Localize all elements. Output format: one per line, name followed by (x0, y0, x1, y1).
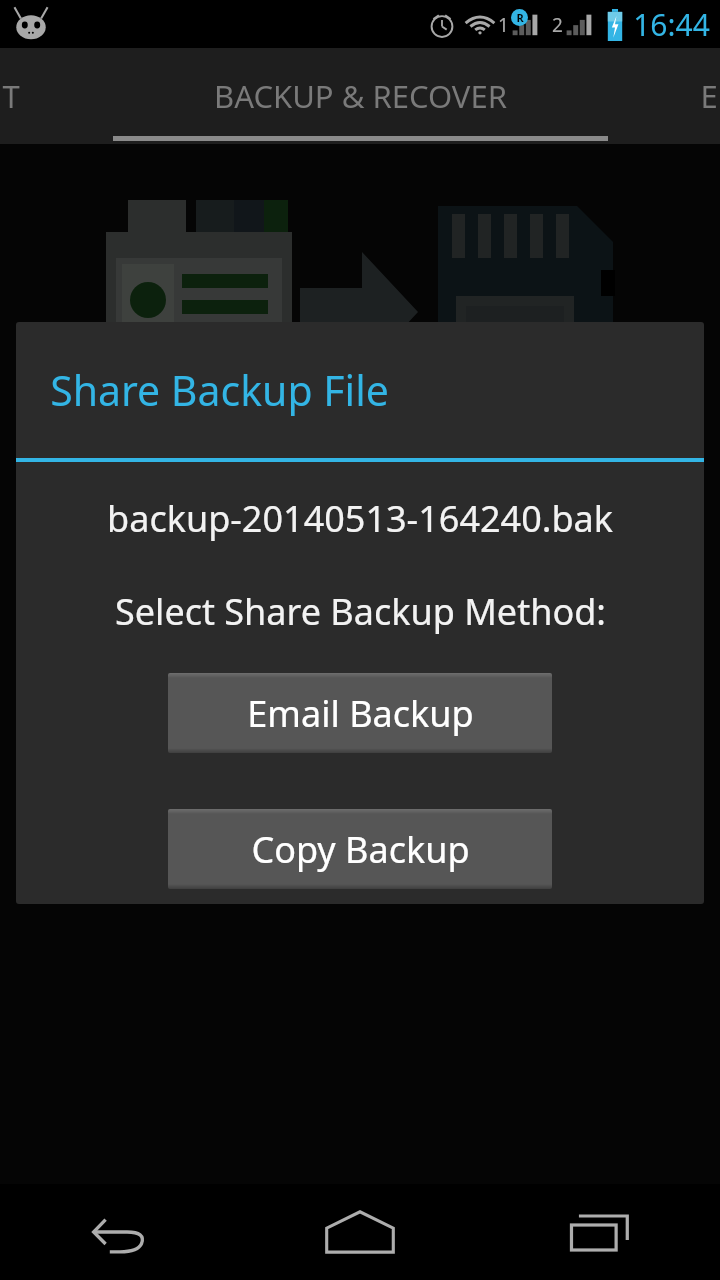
button[interactable]: Recent apps (480, 1184, 720, 1280)
button[interactable]: BACKUP & RECOVER (0, 48, 720, 144)
staticText: BACKUP & RECOVER (214, 75, 507, 117)
staticText: Select Share Backup Method: (115, 587, 606, 636)
button[interactable]: Copy Backup (168, 809, 552, 889)
button[interactable]: Home (240, 1184, 480, 1280)
staticText: 1 (498, 12, 509, 38)
button[interactable]: Back (0, 1184, 240, 1280)
staticText: Email Backup (247, 689, 474, 738)
staticText: R (516, 10, 524, 25)
button[interactable]: Email Backup (168, 673, 552, 753)
staticText: E (700, 75, 718, 117)
staticText: 2 (552, 12, 563, 38)
staticText: backup-20140513-164240.bak (107, 494, 613, 543)
staticText: T (2, 75, 20, 117)
staticText: Share Backup File (50, 362, 389, 418)
staticText: Copy Backup (251, 825, 470, 874)
staticText: 16:44 (633, 4, 710, 45)
